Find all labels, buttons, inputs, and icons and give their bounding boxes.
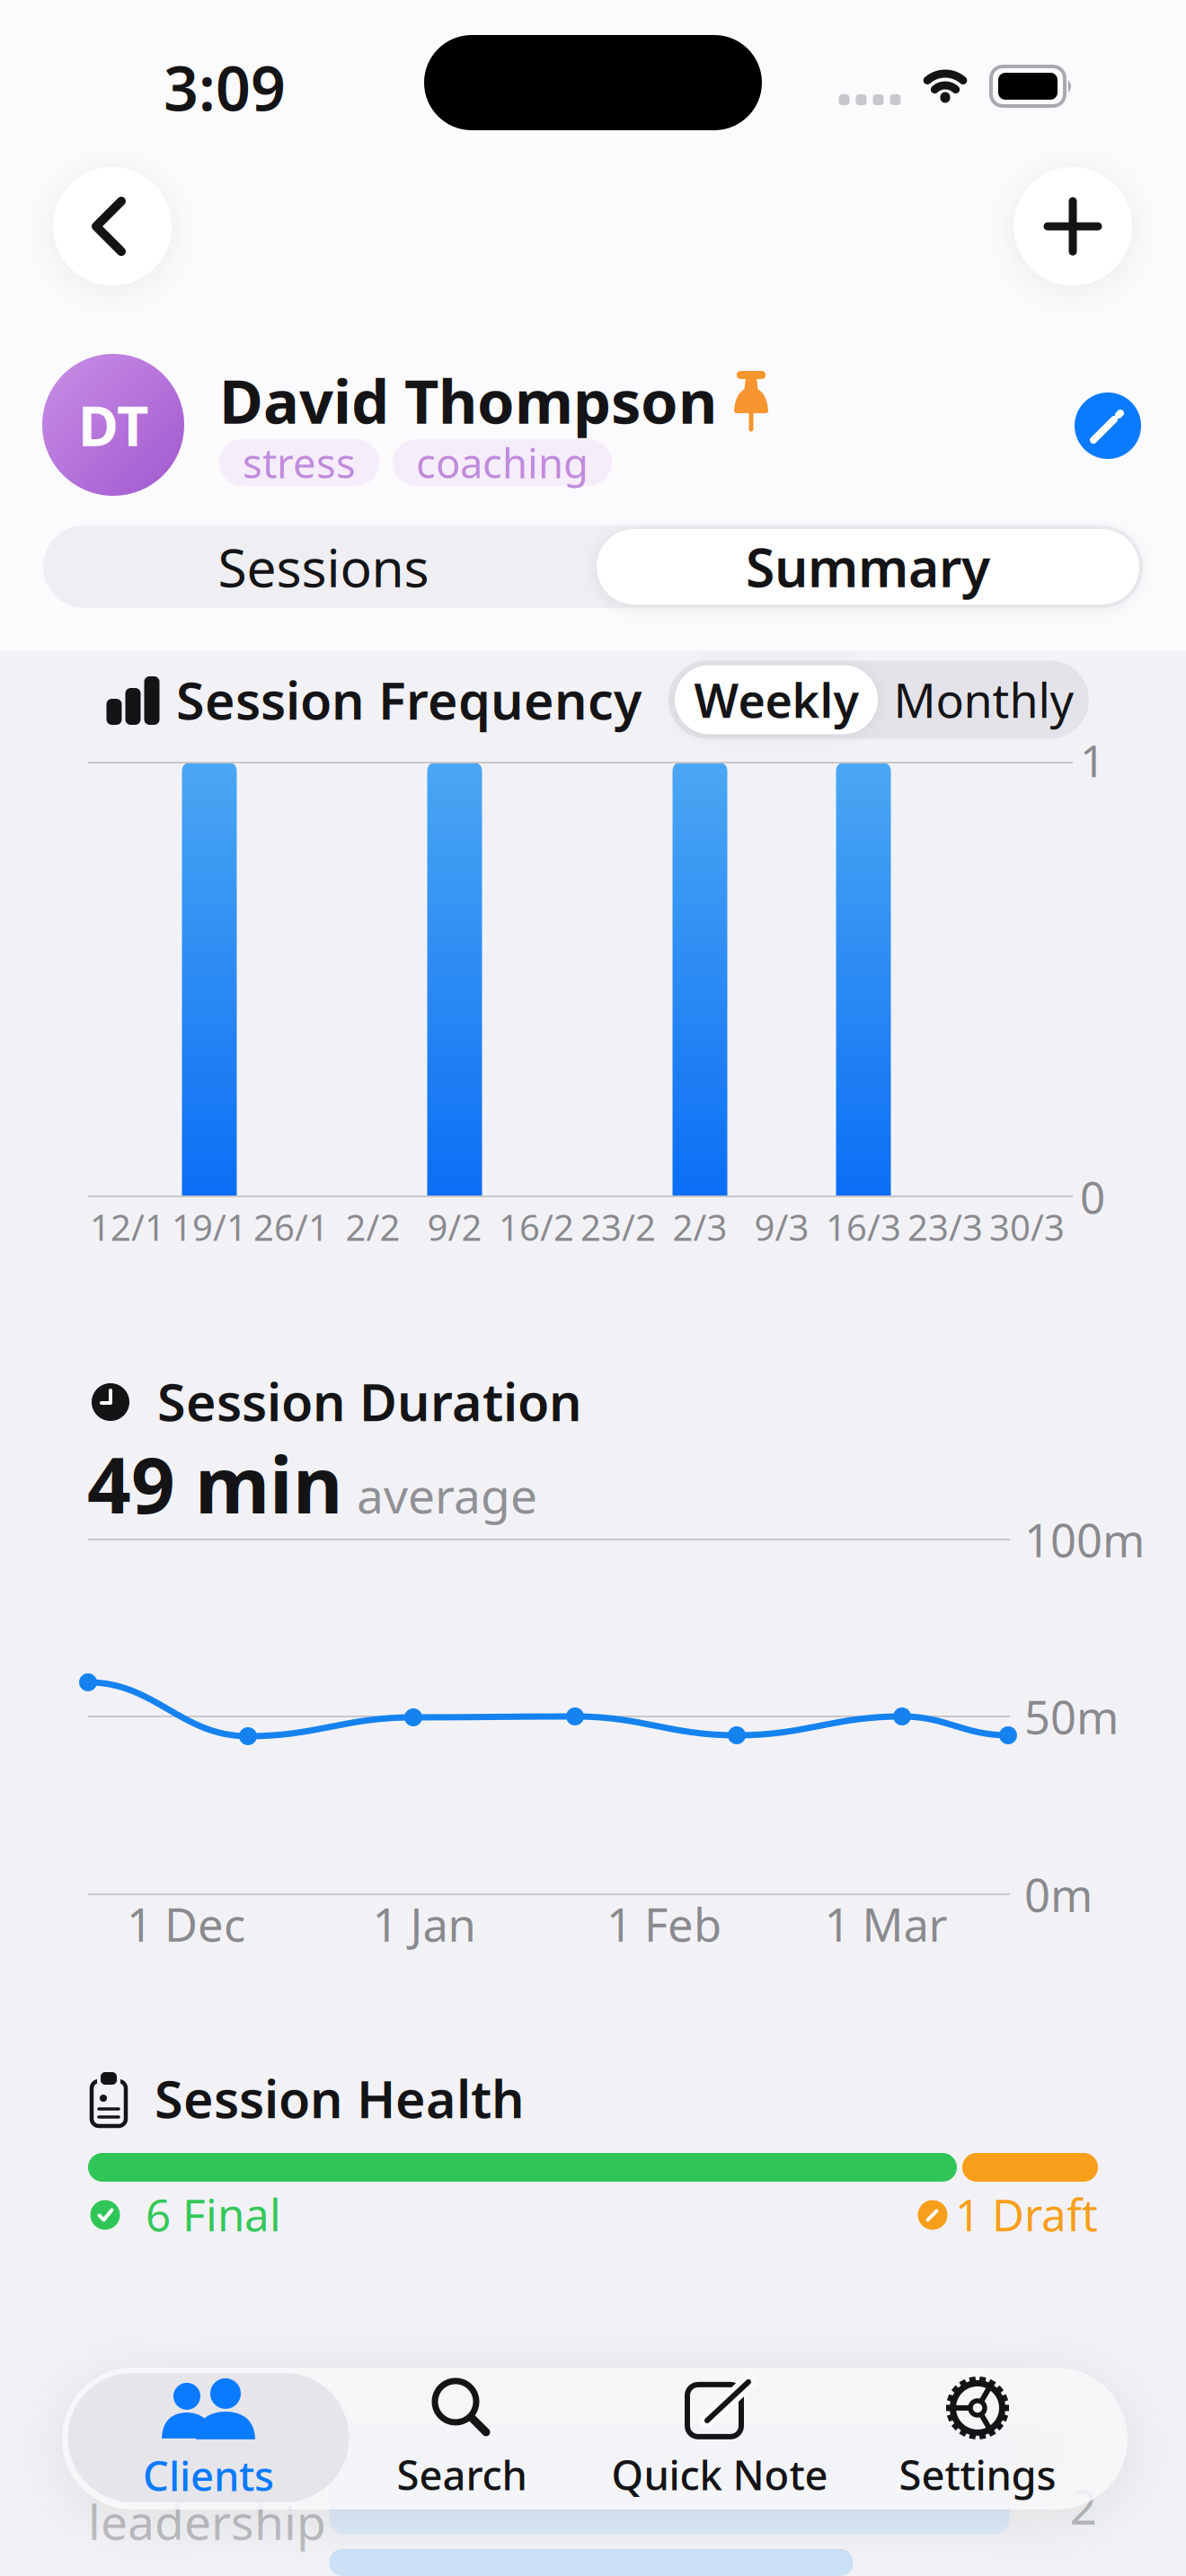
staticText: Monthly xyxy=(894,669,1074,731)
staticText: 9/2 xyxy=(427,1203,482,1251)
button[interactable]: Search xyxy=(354,2379,570,2502)
staticText: average xyxy=(357,1463,537,1527)
staticText: coaching xyxy=(416,436,589,490)
staticText: 16/3 xyxy=(826,1203,901,1251)
staticText: Settings xyxy=(899,2447,1056,2502)
staticText: 23/2 xyxy=(580,1203,656,1251)
staticText: Session Duration xyxy=(157,1367,582,1435)
staticText: 6 Final xyxy=(146,2185,281,2243)
staticText: 9/3 xyxy=(754,1203,809,1251)
button[interactable]: Add xyxy=(1013,167,1132,286)
button[interactable]: Back xyxy=(53,167,172,286)
button[interactable]: Clients xyxy=(68,2373,349,2502)
staticText: Search xyxy=(397,2447,527,2502)
staticText: 0m xyxy=(1024,1864,1093,1925)
staticText: Clients xyxy=(143,2448,274,2502)
staticText: stress xyxy=(243,436,356,490)
staticText: 23/3 xyxy=(907,1203,983,1251)
button[interactable]: Sessions xyxy=(72,525,575,608)
staticText: Session Frequency xyxy=(176,665,642,734)
staticText: 1 Mar xyxy=(824,1894,947,1954)
staticText: Sessions xyxy=(218,532,429,602)
staticText: DT xyxy=(78,388,148,461)
staticText: 2/3 xyxy=(673,1203,727,1251)
staticText: 30/3 xyxy=(989,1203,1065,1251)
button[interactable]: Quick Note xyxy=(598,2379,841,2502)
button[interactable]: Settings xyxy=(870,2379,1085,2502)
button[interactable]: Edit xyxy=(1075,393,1141,459)
button[interactable]: Monthly xyxy=(881,661,1087,739)
staticText: 1 Dec xyxy=(127,1894,245,1954)
staticText: 16/2 xyxy=(499,1203,574,1251)
staticText: 49 min xyxy=(87,1433,342,1535)
staticText: 100m xyxy=(1024,1509,1145,1570)
staticText: Weekly xyxy=(694,669,859,731)
staticText: 2 xyxy=(1070,2474,1097,2538)
staticText: 1 Draft xyxy=(955,2185,1098,2243)
staticText: Quick Note xyxy=(611,2447,828,2502)
staticText: 19/1 xyxy=(172,1203,247,1251)
staticText: David Thompson xyxy=(219,361,717,440)
staticText: 3:09 xyxy=(164,47,286,128)
staticText: Summary xyxy=(746,532,990,602)
staticText: 1 Jan xyxy=(372,1894,476,1954)
button[interactable]: Summary xyxy=(598,525,1137,608)
staticText: 0 xyxy=(1080,1167,1105,1226)
staticText: leadership xyxy=(88,2489,326,2553)
staticText: Session Health xyxy=(155,2064,525,2132)
button[interactable]: Weekly xyxy=(675,661,878,739)
staticText: 2/2 xyxy=(345,1203,400,1251)
staticText: 12/1 xyxy=(90,1203,165,1251)
staticText: 26/1 xyxy=(253,1203,329,1251)
staticText: 1 xyxy=(1080,730,1105,789)
staticText: 1 Feb xyxy=(606,1894,721,1954)
staticText: 50m xyxy=(1024,1686,1119,1747)
